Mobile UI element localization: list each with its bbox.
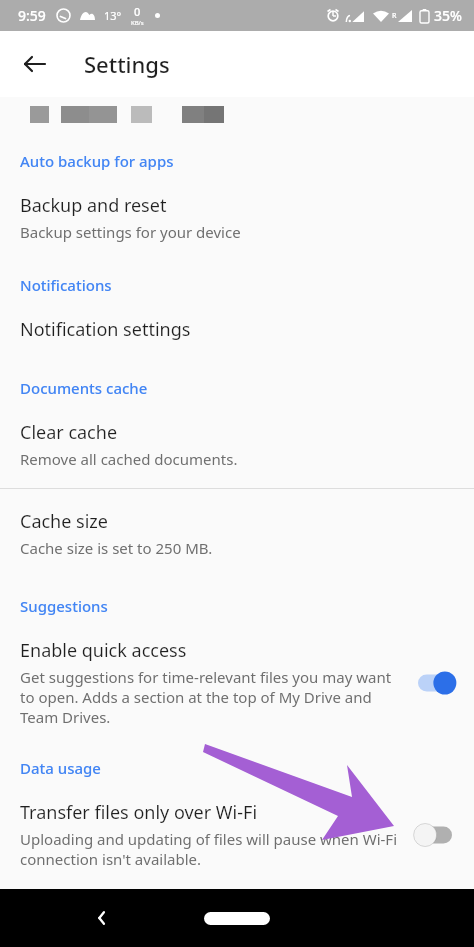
button[interactable]: Home bbox=[200, 903, 274, 933]
staticText: Settings bbox=[84, 49, 170, 79]
button[interactable]: Enable quick access bbox=[0, 638, 474, 727]
staticText: Uploading and updating of files will pau… bbox=[20, 829, 400, 869]
staticText: Notification settings bbox=[20, 317, 191, 342]
button[interactable]: Backup and reset bbox=[0, 193, 474, 242]
staticText: Notifications bbox=[20, 275, 112, 295]
staticText: Remove all cached documents. bbox=[20, 449, 238, 469]
button[interactable]: Back bbox=[84, 900, 120, 936]
staticText: Clear cache bbox=[20, 420, 118, 445]
button[interactable]: Toggle on bbox=[408, 668, 462, 698]
staticText: 35% bbox=[434, 6, 462, 25]
staticText: Documents cache bbox=[20, 378, 148, 398]
staticText: Cache size bbox=[20, 509, 108, 534]
staticText: Backup and reset bbox=[20, 193, 167, 218]
staticText: Transfer files only over Wi-Fi bbox=[20, 800, 258, 825]
staticText: 13° bbox=[104, 8, 122, 23]
staticText: Data usage bbox=[20, 758, 101, 778]
button[interactable]: Transfer files only over Wi-Fi bbox=[0, 800, 474, 869]
button[interactable]: Cache size bbox=[0, 509, 474, 558]
staticText: R bbox=[392, 11, 397, 21]
staticText: Backup settings for your device bbox=[20, 222, 241, 242]
staticText: Suggestions bbox=[20, 596, 108, 616]
button[interactable]: Back bbox=[16, 45, 54, 83]
staticText: KB/s bbox=[131, 19, 144, 27]
staticText: Get suggestions for time-relevant files … bbox=[20, 667, 400, 727]
staticText: Auto backup for apps bbox=[20, 151, 174, 171]
button[interactable]: Clear cache bbox=[0, 420, 474, 469]
button[interactable]: Toggle off bbox=[408, 820, 462, 850]
staticText: 0 bbox=[134, 4, 141, 19]
staticText: 9:59 bbox=[18, 6, 46, 25]
staticText: Enable quick access bbox=[20, 638, 187, 663]
staticText: Cache size is set to 250 MB. bbox=[20, 538, 213, 558]
button[interactable]: Notification settings bbox=[0, 317, 474, 342]
